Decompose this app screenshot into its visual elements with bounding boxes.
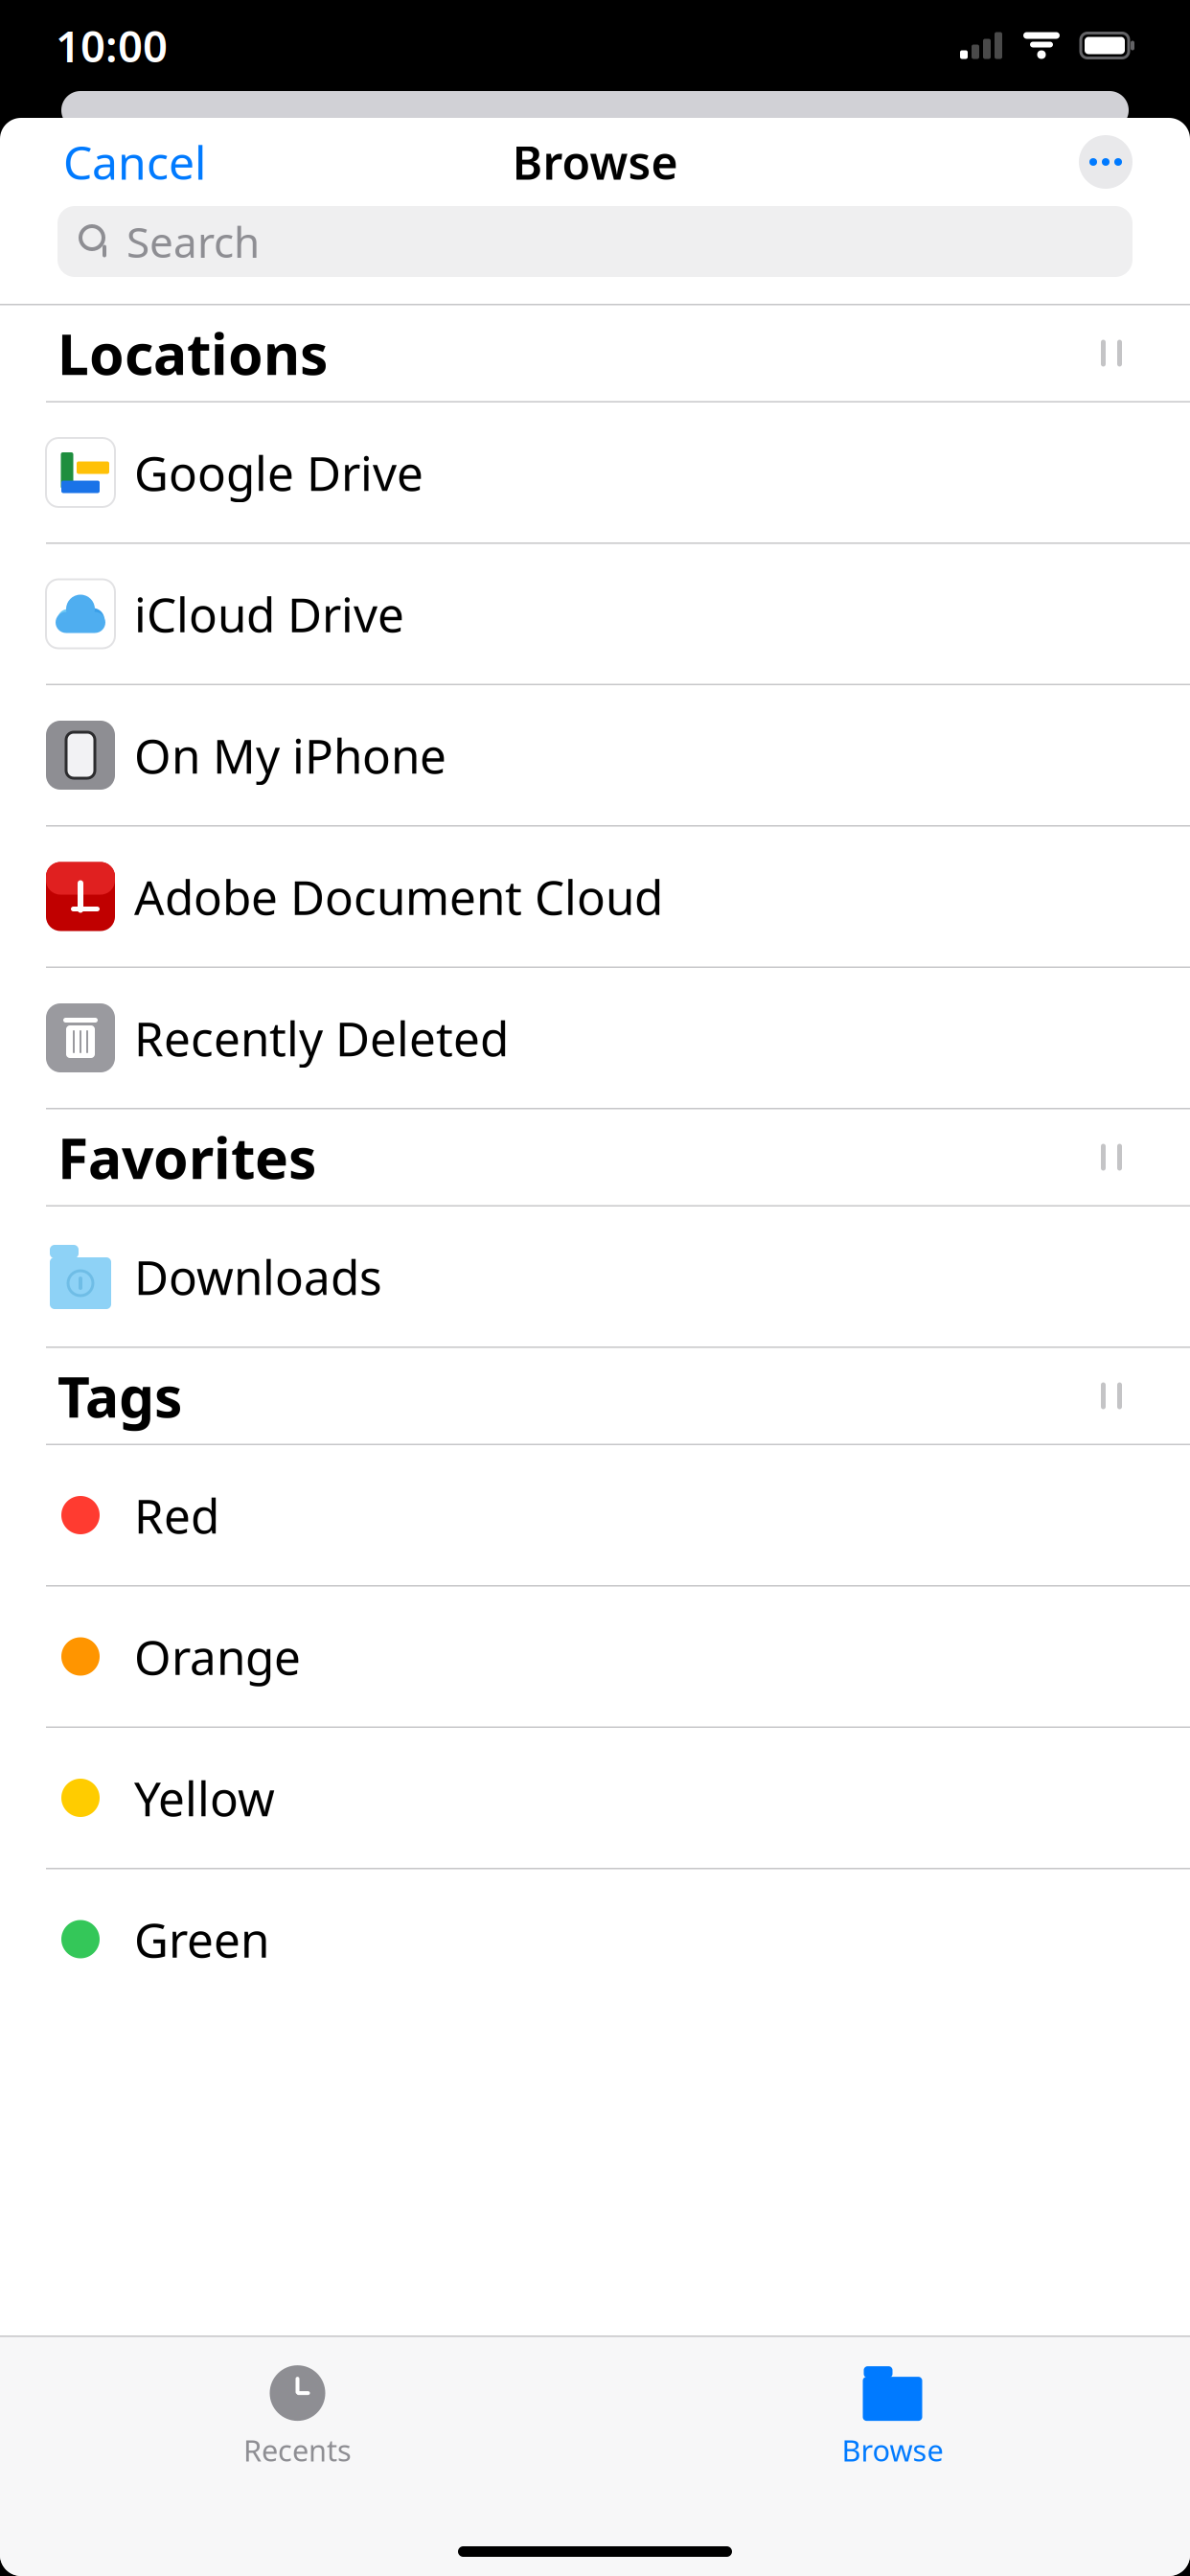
button[interactable]: Green <box>0 1869 1190 2009</box>
staticText: Yellow <box>134 1766 275 1829</box>
staticText: Downloads <box>134 1245 382 1308</box>
staticText: Red <box>134 1484 219 1546</box>
staticText: Recently Deleted <box>134 1006 509 1069</box>
staticText: Locations <box>57 316 328 390</box>
button[interactable]: Google Drive <box>0 402 1190 542</box>
button[interactable]: Adobe Document Cloud <box>0 827 1190 966</box>
button[interactable]: iCloud Drive <box>0 544 1190 684</box>
button[interactable]: Favorites <box>0 1109 1190 1205</box>
staticText: 10:00 <box>56 17 168 74</box>
button[interactable]: Recently Deleted <box>0 968 1190 1108</box>
button[interactable]: More options <box>1079 135 1133 189</box>
staticText: Browse <box>512 131 678 192</box>
staticText: Search <box>126 214 260 269</box>
button[interactable]: Search <box>57 206 1133 277</box>
button[interactable]: Red <box>0 1445 1190 1585</box>
button[interactable]: Browse <box>595 2348 1190 2469</box>
button[interactable]: Locations <box>0 305 1190 401</box>
staticText: Green <box>134 1908 269 1971</box>
button[interactable]: Cancel <box>57 118 212 206</box>
staticText: Cancel <box>63 131 206 192</box>
staticText: Adobe Document Cloud <box>134 865 663 928</box>
button[interactable]: On My iPhone <box>0 685 1190 825</box>
button[interactable]: Tags <box>0 1348 1190 1444</box>
staticText: Browse <box>842 2430 943 2469</box>
button[interactable]: Recents <box>0 2348 595 2469</box>
staticText: Google Drive <box>134 441 423 504</box>
staticText: Tags <box>57 1358 182 1433</box>
staticText: Recents <box>243 2430 352 2469</box>
button[interactable]: Orange <box>0 1587 1190 1726</box>
button[interactable]: Downloads <box>0 1207 1190 1346</box>
staticText: On My iPhone <box>134 724 446 787</box>
staticText: Orange <box>134 1625 301 1688</box>
button[interactable]: Yellow <box>0 1728 1190 1868</box>
staticText: iCloud Drive <box>134 582 404 645</box>
staticText: Favorites <box>57 1120 316 1194</box>
